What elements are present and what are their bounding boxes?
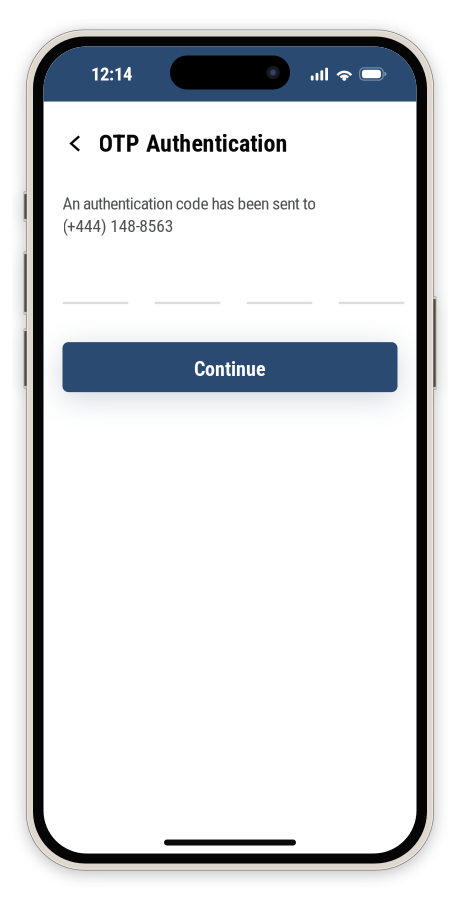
staticText: 12:14 <box>91 63 132 85</box>
button[interactable]: Code digit 2 <box>154 266 220 304</box>
staticText: (+444) 148-8563 <box>62 216 174 236</box>
staticText: OTP Authentication <box>98 129 287 157</box>
button[interactable]: Code digit 4 <box>338 266 404 304</box>
button[interactable]: Back <box>59 121 93 165</box>
button[interactable]: Code digit 1 <box>62 266 128 304</box>
staticText: Continue <box>194 357 266 381</box>
button[interactable]: Code digit 3 <box>246 266 312 304</box>
staticText: An authentication code has been sent to <box>62 193 316 214</box>
button[interactable]: Continue <box>62 342 397 392</box>
